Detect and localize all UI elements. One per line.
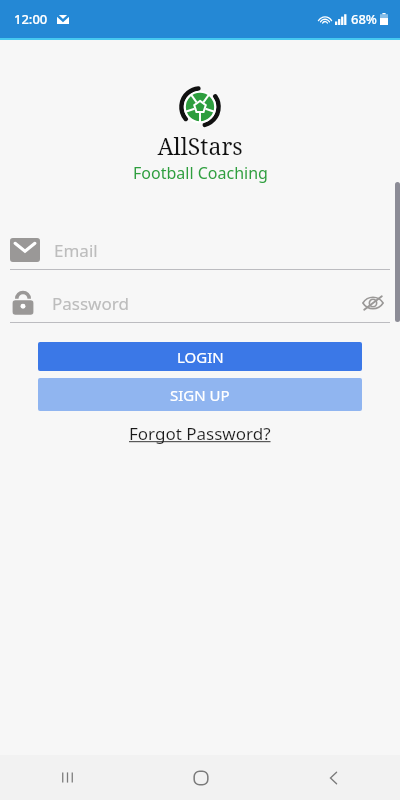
staticText: 68% (351, 10, 377, 28)
button[interactable]: LOGIN (38, 342, 362, 371)
button[interactable]: Email (10, 231, 390, 269)
button[interactable]: SIGN UP (38, 378, 362, 411)
staticText: SIGN UP (170, 385, 230, 405)
button[interactable]: Recent apps (0, 755, 134, 800)
button[interactable]: Show password (356, 286, 390, 320)
staticText: Password (52, 292, 129, 315)
button[interactable]: Home (134, 755, 267, 800)
button[interactable]: Back (267, 755, 400, 800)
staticText: Forgot Password? (129, 422, 271, 445)
button[interactable]: Password (10, 284, 356, 322)
button[interactable]: Forgot Password? (123, 420, 277, 447)
staticText: Football Coaching (133, 162, 268, 184)
staticText: AllStars (157, 130, 243, 161)
staticText: Email (54, 239, 98, 262)
staticText: LOGIN (177, 347, 224, 367)
staticText: 12:00 (14, 10, 48, 28)
